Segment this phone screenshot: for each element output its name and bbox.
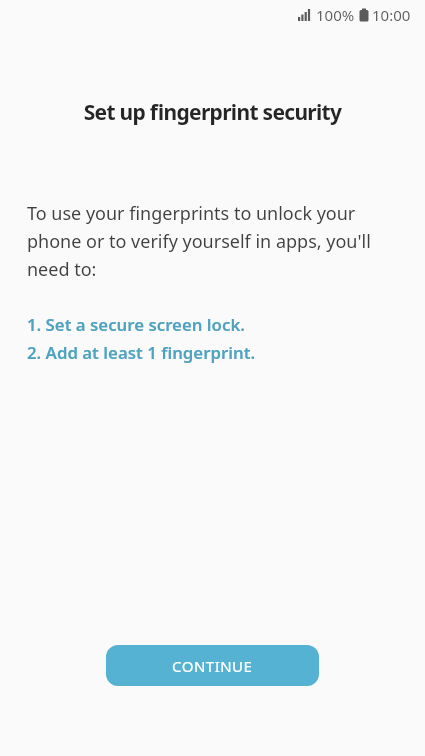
staticText: 10:00 bbox=[372, 5, 411, 25]
button[interactable]: CONTINUE bbox=[106, 645, 319, 686]
staticText: CONTINUE bbox=[172, 656, 253, 676]
staticText: 100% bbox=[316, 5, 355, 25]
staticText: Set up fingerprint security bbox=[0, 98, 425, 127]
staticText: 1. Set a secure screen lock. 2. Add at l… bbox=[27, 313, 256, 364]
staticText: To use your fingerprints to unlock your … bbox=[27, 201, 371, 281]
